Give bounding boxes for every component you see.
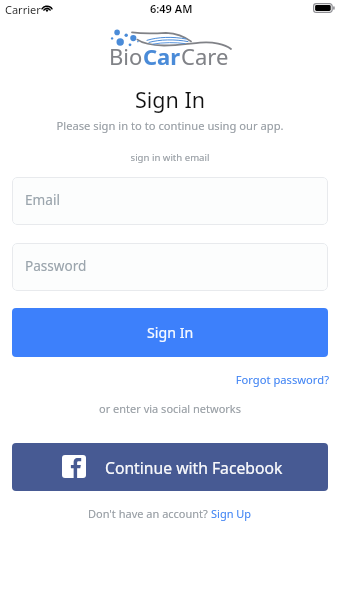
staticText: or enter via social networks <box>0 401 340 416</box>
staticText: Don't have an account? <box>88 506 211 521</box>
staticText: 6:49 AM <box>150 1 193 16</box>
staticText: Password <box>25 256 87 275</box>
button[interactable]: Continue with Facebook <box>12 443 328 491</box>
button[interactable]: Email <box>12 177 328 225</box>
staticText: Bio <box>109 41 143 71</box>
staticText: Continue with Facebook <box>105 457 283 478</box>
staticText: Care <box>181 41 229 71</box>
button[interactable]: Forgot password? <box>0 372 329 387</box>
staticText: Email <box>25 190 60 209</box>
staticText: Sign In <box>0 85 340 114</box>
staticText: Car <box>143 41 181 71</box>
staticText: Carrier <box>5 2 41 17</box>
button[interactable]: Password <box>12 243 328 291</box>
button[interactable]: Sign In <box>12 308 328 357</box>
button[interactable]: Sign Up <box>211 506 252 521</box>
staticText: Sign In <box>147 323 194 342</box>
staticText: sign in with email <box>0 151 340 164</box>
staticText: Please sign in to to continue using our … <box>0 118 340 133</box>
